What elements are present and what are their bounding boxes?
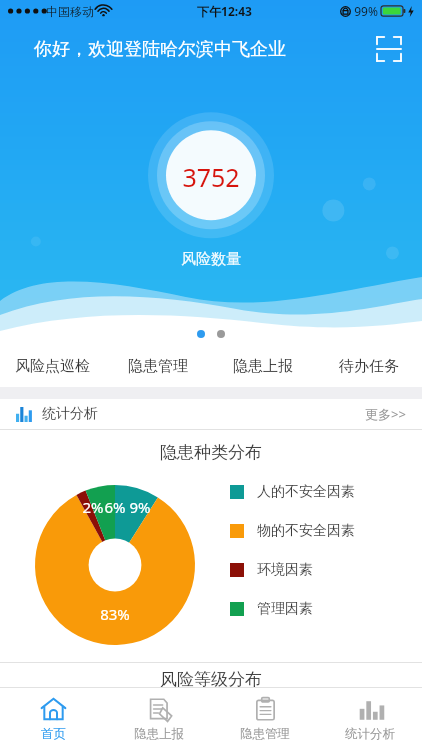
staticText: 隐患管理 [128, 357, 188, 376]
staticText: 下午12:43 [197, 3, 252, 19]
staticText: 隐患种类分布 [160, 442, 262, 463]
button[interactable]: 统计分析 [0, 399, 422, 429]
staticText: 风险等级分布 [160, 669, 262, 690]
staticText: 你好，欢迎登陆哈尔滨中飞企业 [34, 38, 286, 61]
button[interactable]: 风险点巡检 [0, 345, 105, 387]
staticText: 99% [354, 3, 378, 19]
button[interactable]: 物的不安全因素 [230, 522, 422, 540]
staticText: 首页 [41, 726, 66, 742]
button[interactable]: 隐患上报 [210, 345, 316, 387]
staticText: 环境因素 [257, 561, 313, 579]
button[interactable]: 待办任务 [316, 345, 422, 387]
staticText: 隐患上报 [134, 726, 184, 742]
staticText: 物的不安全因素 [257, 522, 355, 540]
staticText: 3752 [182, 160, 240, 194]
button[interactable]: 环境因素 [230, 561, 422, 579]
staticText: 隐患管理 [240, 726, 290, 742]
button[interactable]: 管理因素 [230, 600, 422, 618]
staticText: 6% [104, 497, 126, 517]
staticText: 风险点巡检 [15, 357, 90, 376]
button[interactable]: 人的不安全因素 [230, 483, 422, 501]
staticText: 风险数量 [181, 250, 241, 269]
staticText: 待办任务 [339, 357, 399, 376]
staticText: 83% [100, 604, 130, 624]
staticText: 2% [82, 497, 104, 517]
staticText: 统计分析 [345, 726, 395, 742]
staticText: 9% [129, 497, 151, 517]
button[interactable]: 隐患上报 [106, 688, 212, 750]
button[interactable]: 隐患管理 [105, 345, 210, 387]
staticText: 更多>> [365, 405, 406, 423]
staticText: 中国移动 [46, 4, 94, 19]
staticText: 人的不安全因素 [257, 483, 355, 501]
staticText: 统计分析 [42, 405, 98, 423]
staticText: 隐患上报 [233, 357, 293, 376]
button[interactable]: 扫一扫 Scan [374, 34, 404, 64]
button[interactable]: 隐患管理 [212, 688, 318, 750]
staticText: 管理因素 [257, 600, 313, 618]
button[interactable]: 首页 [0, 688, 106, 750]
button[interactable]: 统计分析 [318, 688, 422, 750]
